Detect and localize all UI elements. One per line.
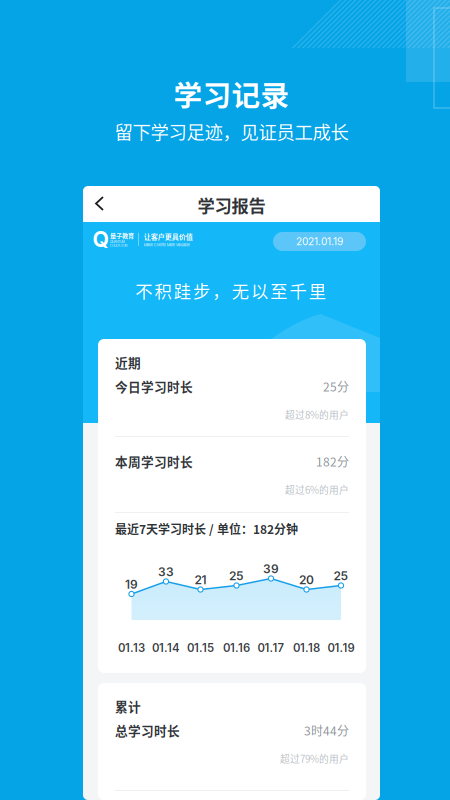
staticText: 01.19 xyxy=(327,641,354,655)
button[interactable]: 今日学习时长 xyxy=(98,377,366,421)
staticText: 学习报告 xyxy=(197,192,265,218)
button[interactable]: 总学习时长 xyxy=(98,721,366,765)
staticText: 20 xyxy=(299,572,314,587)
staticText: QUANTUM xyxy=(110,240,125,244)
staticText: 182分 xyxy=(316,452,349,470)
staticText: 25 xyxy=(229,568,244,583)
staticText: 超过6%的用户 xyxy=(285,482,349,496)
button[interactable]: 返回 xyxy=(83,186,119,221)
staticText: 累计 xyxy=(115,697,141,715)
staticText: 超过79%的用户 xyxy=(280,751,349,765)
staticText: 25分 xyxy=(323,377,349,395)
button[interactable]: 本周学习时长 xyxy=(98,452,366,496)
staticText: 超过8%的用户 xyxy=(285,407,349,421)
staticText: 量子教育 xyxy=(110,231,134,240)
staticText: 本周学习时长 xyxy=(115,452,193,470)
button[interactable]: 2021.01.19 xyxy=(273,232,366,251)
staticText: 01.14 xyxy=(152,641,180,655)
staticText: Q xyxy=(92,226,109,252)
staticText: 近期 xyxy=(115,353,141,371)
staticText: EDUCATION xyxy=(110,244,127,248)
staticText: 01.18 xyxy=(293,641,320,655)
staticText: 33 xyxy=(158,564,174,579)
staticText: 总学习时长 xyxy=(115,721,180,739)
staticText: 不积跬步，无以至千里 xyxy=(135,278,326,303)
staticText: 3时44分 xyxy=(304,721,349,739)
staticText: 今日学习时长 xyxy=(115,377,193,395)
staticText: 01.15 xyxy=(187,641,214,655)
staticText: 最近7天学习时长 / 单位：182分钟 xyxy=(115,520,298,537)
staticText: 01.17 xyxy=(257,641,284,655)
staticText: 25 xyxy=(333,568,348,583)
staticText: Make Clients More Valuable xyxy=(144,243,190,247)
staticText: 01.13 xyxy=(118,641,145,655)
staticText: 学习记录 xyxy=(173,73,289,114)
staticText: 01.16 xyxy=(223,641,250,655)
staticText: 让客户更具价值 xyxy=(144,231,193,242)
staticText: 39 xyxy=(263,561,279,576)
staticText: 21 xyxy=(194,572,206,587)
button[interactable]: 学习报告 xyxy=(83,197,380,213)
staticText: 19 xyxy=(125,577,138,591)
staticText: 留下学习足迹，见证员工成长 xyxy=(114,118,348,145)
staticText: 2021.01.19 xyxy=(296,235,343,248)
